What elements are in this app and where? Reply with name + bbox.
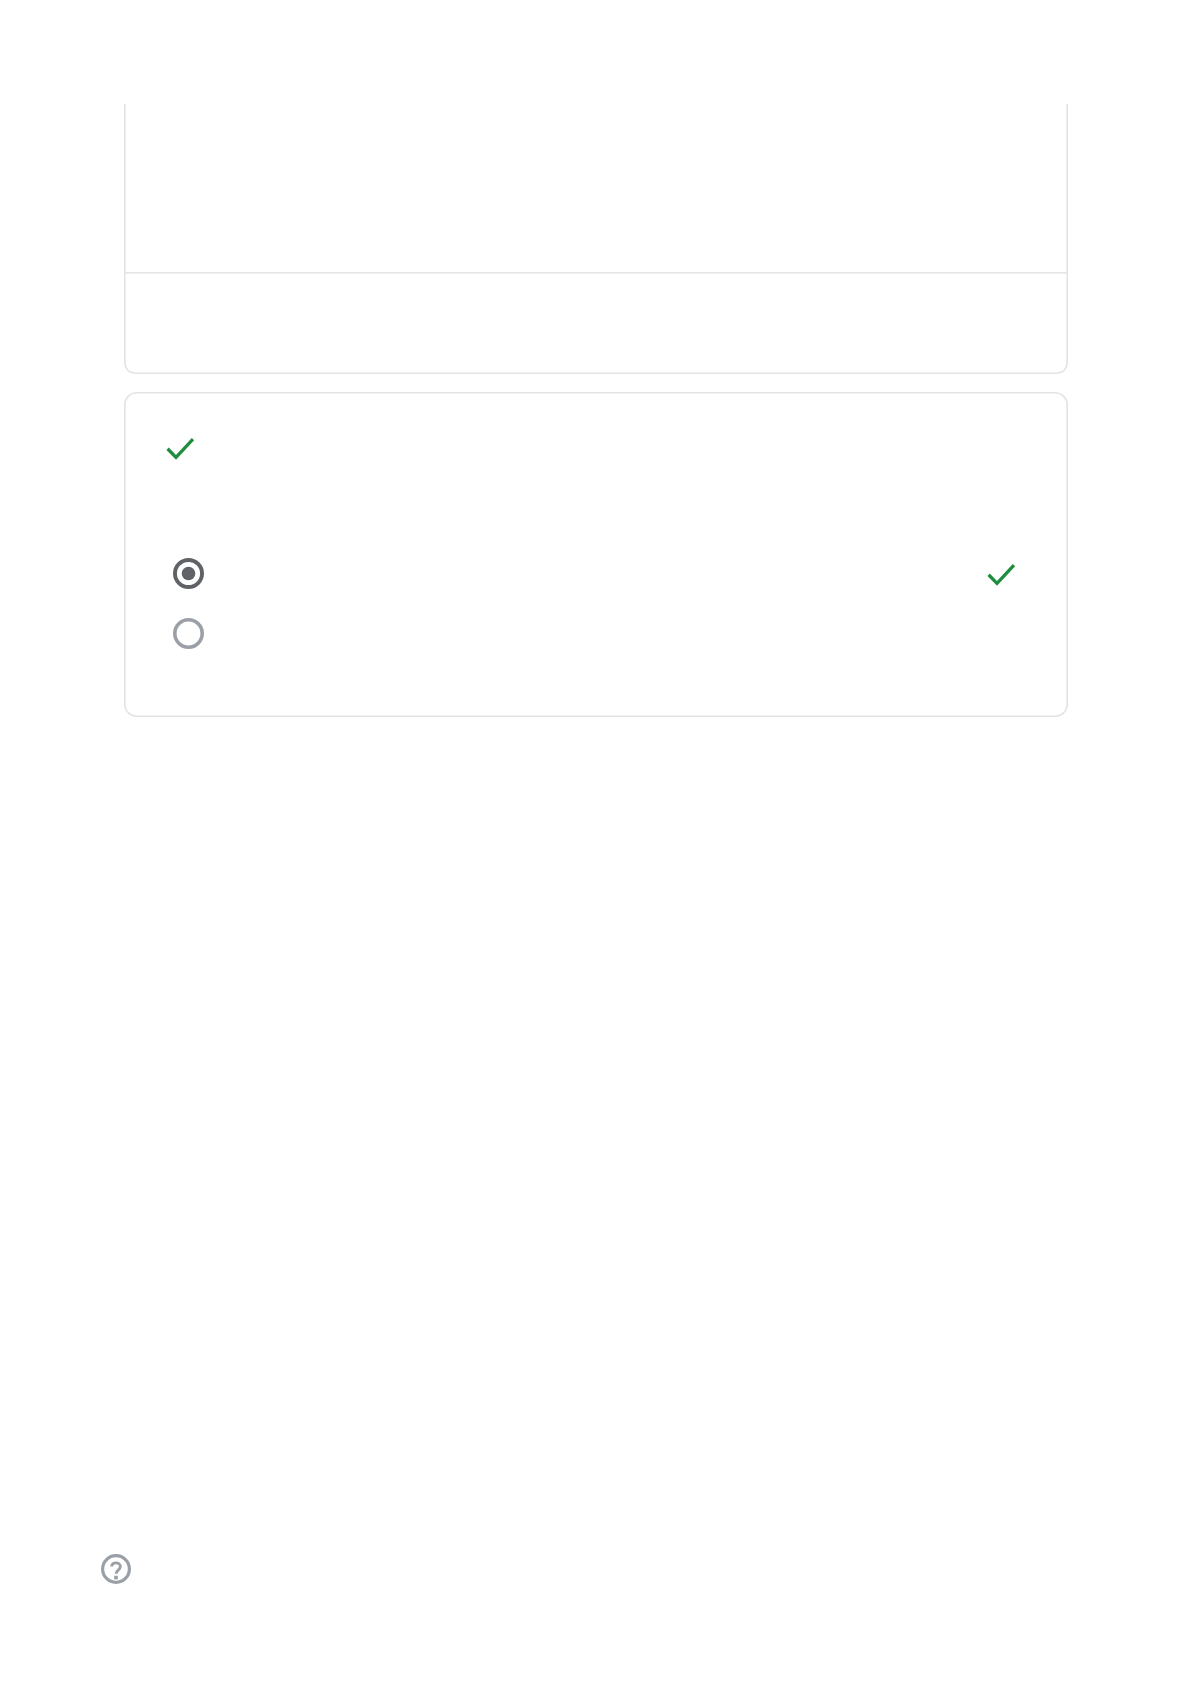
button[interactable]	[124, 552, 1068, 596]
button[interactable]	[124, 104, 1068, 374]
button[interactable]: Correct answer	[166, 436, 195, 465]
button[interactable]	[124, 612, 1068, 656]
button[interactable]: Help	[101, 1554, 131, 1584]
